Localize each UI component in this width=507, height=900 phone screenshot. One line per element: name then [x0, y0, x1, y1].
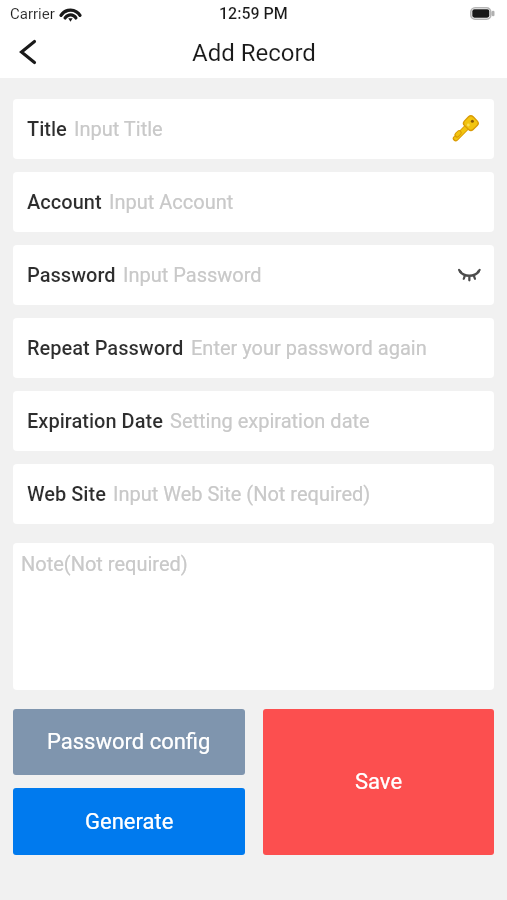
button[interactable]: Note(Not required) [13, 543, 494, 690]
staticText: Password config [47, 729, 211, 755]
staticText: Repeat Password [27, 336, 184, 359]
button[interactable]: Web Site [13, 464, 494, 524]
button[interactable]: Generate password [450, 114, 480, 144]
staticText: Account [27, 190, 102, 213]
staticText: Expiration Date [27, 409, 163, 432]
staticText: Web Site [27, 482, 106, 505]
staticText: Enter your password again [191, 336, 427, 359]
staticText: Save [355, 769, 403, 795]
button[interactable]: Title [13, 99, 494, 159]
button[interactable]: Expiration Date [13, 391, 494, 451]
button[interactable]: Password [13, 245, 494, 305]
staticText: Setting expiration date [170, 409, 370, 432]
staticText: Add Record [192, 39, 316, 67]
button[interactable]: Account [13, 172, 494, 232]
button[interactable]: Password config [13, 709, 245, 775]
staticText: Input Title [74, 117, 163, 140]
button[interactable]: Back [8, 32, 48, 72]
staticText: Input Password [123, 263, 262, 286]
staticText: Carrier [10, 5, 55, 23]
staticText: Title [27, 117, 67, 140]
staticText: Input Web Site (Not required) [113, 482, 371, 505]
button[interactable]: Show password [450, 260, 480, 290]
button[interactable]: Generate [13, 788, 245, 855]
staticText: 12:59 PM [219, 4, 288, 23]
staticText: Note(Not required) [21, 552, 188, 575]
staticText: Input Account [109, 190, 234, 213]
button[interactable]: Save [263, 709, 494, 855]
staticText: Password [27, 263, 116, 286]
button[interactable]: Repeat Password [13, 318, 494, 378]
staticText: Generate [85, 809, 174, 835]
